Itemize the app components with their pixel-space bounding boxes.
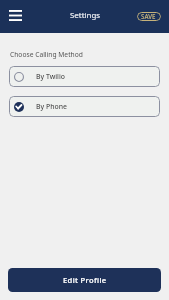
- button[interactable]: Edit Profile: [8, 268, 161, 292]
- staticText: Edit Profile: [63, 275, 107, 285]
- staticText: SAVE: [141, 12, 156, 20]
- staticText: By Twilio: [36, 72, 66, 81]
- button[interactable]: By Phone: [9, 96, 160, 117]
- button[interactable]: By Twilio: [9, 66, 160, 87]
- button[interactable]: SAVE: [137, 12, 161, 21]
- staticText: By Phone: [36, 102, 67, 111]
- staticText: Choose Calling Method: [10, 50, 83, 59]
- staticText: Settings: [70, 10, 101, 21]
- button[interactable]: Menu: [4, 4, 26, 26]
